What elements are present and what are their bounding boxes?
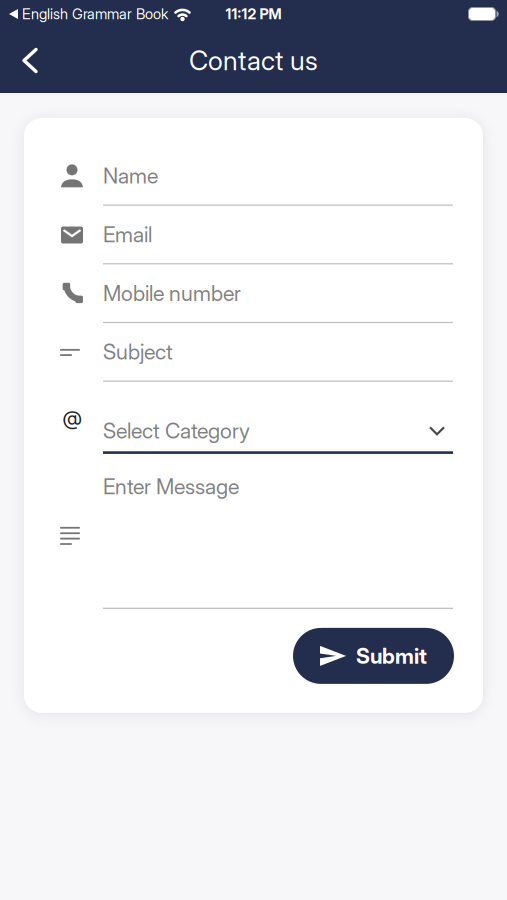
staticText: English Grammar Book <box>22 5 168 23</box>
button[interactable]: Mobile number <box>103 264 453 322</box>
staticText: Submit <box>356 643 427 668</box>
staticText: Enter Message <box>103 474 239 499</box>
button[interactable]: Enter Message <box>103 454 453 499</box>
staticText: Email <box>103 222 152 247</box>
button[interactable]: Select Category <box>103 410 453 451</box>
button[interactable]: Email <box>103 206 453 263</box>
staticText: 11:12 PM <box>225 5 281 23</box>
button[interactable]: Subject <box>103 323 453 381</box>
staticText: @ <box>62 406 81 430</box>
button[interactable]: Back to English Grammar Book <box>9 5 193 23</box>
button[interactable]: Submit <box>293 628 454 684</box>
staticText: Mobile number <box>103 281 241 306</box>
staticText: Subject <box>103 339 173 364</box>
staticText: Contact us <box>189 45 318 76</box>
button[interactable]: Name <box>103 147 453 204</box>
staticText: Select Category <box>103 418 250 443</box>
button[interactable]: Back <box>0 29 38 91</box>
staticText: Name <box>103 163 158 188</box>
